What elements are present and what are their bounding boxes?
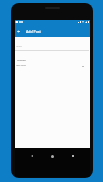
staticText: CATEGORIES <box>17 59 26 61</box>
button[interactable]: Home <box>47 152 57 160</box>
staticText: Select Option <box>16 64 26 66</box>
button[interactable]: Select Option <box>15 63 89 70</box>
button[interactable]: Recent apps <box>68 152 78 160</box>
button[interactable]: Back <box>27 152 37 160</box>
staticText: Add Title <box>16 46 22 48</box>
staticText: Add Post <box>26 29 41 34</box>
button[interactable]: Back <box>14 27 22 35</box>
